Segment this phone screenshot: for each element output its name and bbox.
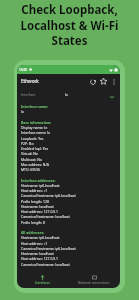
staticText: Prefix length: 8 <box>21 220 46 225</box>
button[interactable]: Interfaces <box>17 272 68 288</box>
staticText: Host address: ::1 <box>21 241 48 246</box>
staticText: Host address: ::1 <box>21 188 48 193</box>
staticText: lo <box>21 109 24 114</box>
staticText: Enabled (up): Yes <box>21 146 49 151</box>
button[interactable]: More options <box>109 77 118 86</box>
staticText: Base information: <box>21 120 52 125</box>
staticText: Interface name: lo <box>21 130 51 135</box>
staticText: lo <box>65 92 68 97</box>
staticText: Hostname: ip6-localhost <box>21 235 60 240</box>
staticText: Prefix length: 128 <box>21 199 49 204</box>
staticText: All addresses: <box>21 230 45 235</box>
staticText: Multicast: No <box>21 157 42 162</box>
button[interactable]: Favorite <box>98 76 109 87</box>
staticText: Interface <box>21 92 36 97</box>
staticText: Interface name: <box>21 104 49 109</box>
staticText: Canonical hostname: ip6-localhost <box>21 193 76 198</box>
staticText: Canonical hostname: ip6-localhost <box>21 246 76 251</box>
staticText: Network connections <box>78 281 110 285</box>
staticText: 18:35 <box>19 68 28 72</box>
staticText: Loopback: Yes <box>21 136 44 141</box>
staticText: MTU: 65536 <box>21 167 40 172</box>
button[interactable]: Refresh <box>87 76 98 87</box>
staticText: Canonical hostname: localhost <box>21 214 70 219</box>
staticText: Canonical hostname: localhost <box>21 262 70 267</box>
staticText: Virtual: No <box>21 151 38 156</box>
staticText: Display name: lo <box>21 125 48 130</box>
staticText: Mac address: N/A <box>21 162 49 167</box>
button[interactable]: Network connections <box>68 272 120 288</box>
staticText: Interface addresses: <box>21 178 56 183</box>
staticText: Host address: 127.0.0.1 <box>21 256 59 261</box>
staticText: Hostname: localhost <box>21 204 54 209</box>
staticText: Hostname: localhost <box>21 251 54 256</box>
staticText: Check Loopback, Localhost & Wi-Fi States <box>0 2 139 48</box>
staticText: Ethwork <box>21 78 39 84</box>
button[interactable]: Interface <box>17 88 120 100</box>
staticText: Hostname: ip6-localhost <box>21 183 60 188</box>
staticText: Host address: 127.0.0.1 <box>21 209 59 214</box>
staticText: P2P: No <box>21 141 34 146</box>
staticText: Interfaces <box>35 281 51 285</box>
